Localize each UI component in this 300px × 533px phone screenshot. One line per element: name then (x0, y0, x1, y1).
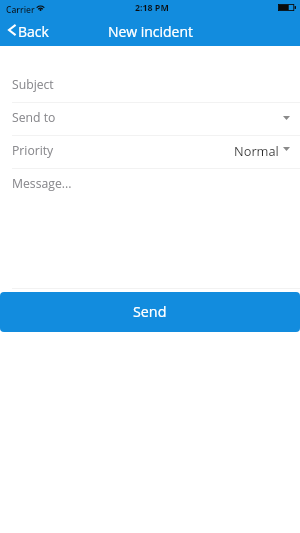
staticText: Priority (12, 142, 54, 159)
staticText: Subject (12, 76, 54, 93)
staticText: Send (133, 302, 167, 321)
button[interactable]: Message... (0, 169, 300, 201)
staticText: Back (18, 22, 49, 41)
staticText: Message... (12, 175, 72, 192)
button[interactable]: Send (0, 292, 300, 332)
staticText: New incident (108, 22, 193, 41)
other: Back (8, 24, 16, 36)
button[interactable]: Subject (0, 70, 300, 102)
staticText: Normal (234, 142, 279, 159)
button[interactable]: Back (0, 19, 57, 43)
staticText: Carrier (6, 4, 35, 16)
button[interactable]: Priority (0, 136, 300, 168)
staticText: 2:18 PM (135, 2, 169, 14)
other: Battery (278, 4, 296, 11)
staticText: Send to (12, 109, 56, 126)
button[interactable]: Send to (0, 103, 300, 135)
